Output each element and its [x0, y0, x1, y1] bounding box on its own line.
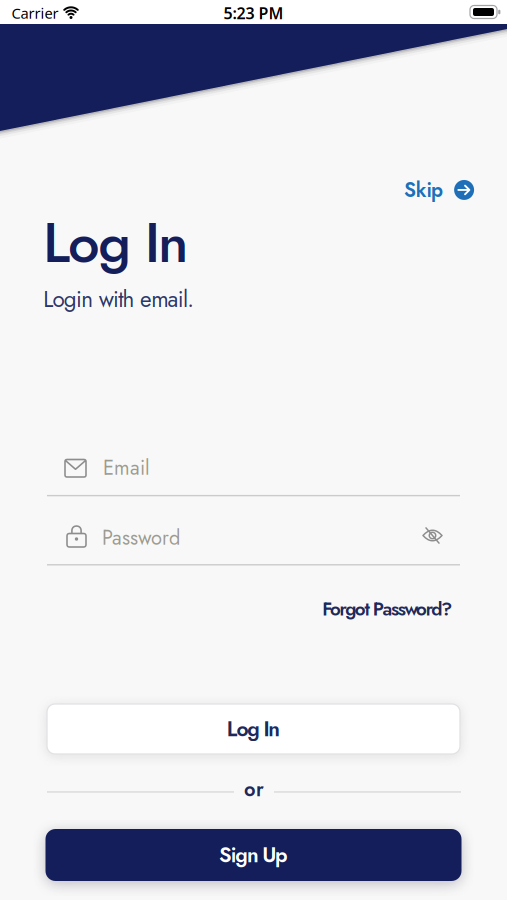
- staticText: Log In: [43, 202, 189, 283]
- staticText: Forgot Password?: [322, 596, 452, 623]
- button[interactable]: Skip: [404, 175, 474, 204]
- staticText: Skip: [404, 175, 443, 204]
- textField[interactable]: Email: [103, 453, 507, 482]
- staticText: Login with email.: [43, 283, 194, 315]
- staticText: Carrier: [11, 3, 58, 23]
- staticText: Email: [103, 453, 150, 482]
- staticText: or: [244, 775, 264, 804]
- textField[interactable]: Password: [102, 523, 507, 552]
- button[interactable]: Show password: [423, 526, 442, 545]
- button[interactable]: Sign Up: [45, 829, 461, 881]
- staticText: Password: [102, 523, 180, 552]
- button[interactable]: Forgot Password?: [322, 596, 452, 623]
- staticText: Sign Up: [219, 840, 288, 870]
- button[interactable]: Log In: [47, 704, 460, 754]
- staticText: Log In: [227, 714, 280, 744]
- staticText: 5:23 PM: [223, 2, 283, 23]
